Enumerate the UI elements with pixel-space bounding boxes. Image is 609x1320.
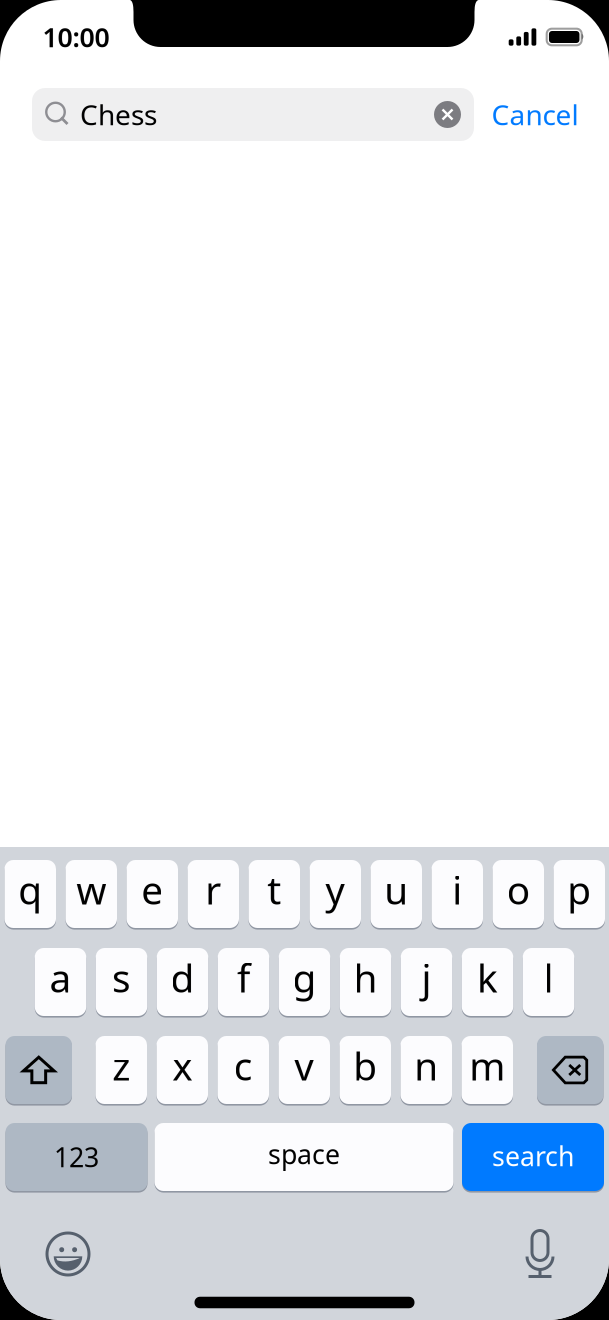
staticText: n — [414, 1040, 438, 1091]
button[interactable]: u — [0, 0, 609, 1320]
staticText: y — [325, 864, 345, 915]
button[interactable]: search — [0, 0, 609, 1320]
button[interactable]: d — [0, 0, 609, 1320]
staticText: z — [112, 1040, 130, 1091]
staticText: w — [76, 864, 106, 915]
button[interactable]: x — [0, 0, 609, 1320]
staticText: t — [267, 864, 281, 915]
staticText: Chess — [80, 96, 157, 133]
button[interactable]: y — [0, 0, 609, 1320]
staticText: l — [543, 952, 553, 1003]
staticText: a — [49, 952, 71, 1003]
button[interactable]: f — [0, 0, 609, 1320]
staticText: u — [384, 864, 408, 915]
staticText: m — [469, 1040, 505, 1091]
button[interactable]: e — [0, 0, 609, 1320]
button[interactable]: Shift — [0, 0, 609, 1320]
staticText: g — [292, 952, 316, 1003]
button[interactable]: p — [0, 0, 609, 1320]
button[interactable]: h — [0, 0, 609, 1320]
staticText: s — [112, 952, 131, 1003]
button[interactable]: j — [0, 0, 609, 1320]
button[interactable]: space — [0, 0, 609, 1320]
button[interactable]: w — [0, 0, 609, 1320]
staticText: 123 — [54, 1139, 99, 1175]
staticText: i — [452, 864, 462, 915]
button[interactable]: r — [0, 0, 609, 1320]
staticText: b — [353, 1040, 377, 1091]
staticText: d — [170, 952, 194, 1003]
button[interactable]: o — [0, 0, 609, 1320]
staticText: c — [234, 1040, 253, 1091]
staticText: f — [237, 952, 250, 1003]
staticText: e — [141, 864, 163, 915]
staticText: space — [268, 1136, 340, 1172]
button[interactable]: b — [0, 0, 609, 1320]
staticText: r — [205, 864, 221, 915]
button[interactable]: s — [0, 0, 609, 1320]
button[interactable]: m — [0, 0, 609, 1320]
staticText: k — [477, 952, 498, 1003]
staticText: q — [18, 864, 42, 915]
staticText: h — [353, 952, 377, 1003]
staticText: Cancel — [491, 96, 578, 133]
button[interactable]: q — [0, 0, 609, 1320]
button[interactable]: Chess — [32, 88, 474, 141]
button[interactable]: c — [0, 0, 609, 1320]
button[interactable]: v — [0, 0, 609, 1320]
button[interactable]: k — [0, 0, 609, 1320]
button[interactable]: Delete — [0, 0, 609, 1320]
staticText: j — [421, 952, 431, 1003]
button[interactable]: Dictation — [523, 1230, 557, 1276]
button[interactable]: n — [0, 0, 609, 1320]
staticText: p — [567, 864, 591, 915]
staticText: x — [172, 1040, 192, 1091]
button[interactable]: t — [0, 0, 609, 1320]
staticText: v — [294, 1040, 314, 1091]
button[interactable]: Emoji keyboard — [46, 1232, 90, 1276]
button[interactable]: Cancel — [480, 88, 590, 141]
button[interactable]: g — [0, 0, 609, 1320]
button[interactable]: 123 — [0, 0, 609, 1320]
staticText: o — [507, 864, 530, 915]
button[interactable]: a — [0, 0, 609, 1320]
staticText: 10:00 — [42, 19, 109, 55]
button[interactable]: l — [0, 0, 609, 1320]
button[interactable]: i — [0, 0, 609, 1320]
button[interactable]: z — [0, 0, 609, 1320]
staticText: search — [492, 1138, 574, 1174]
